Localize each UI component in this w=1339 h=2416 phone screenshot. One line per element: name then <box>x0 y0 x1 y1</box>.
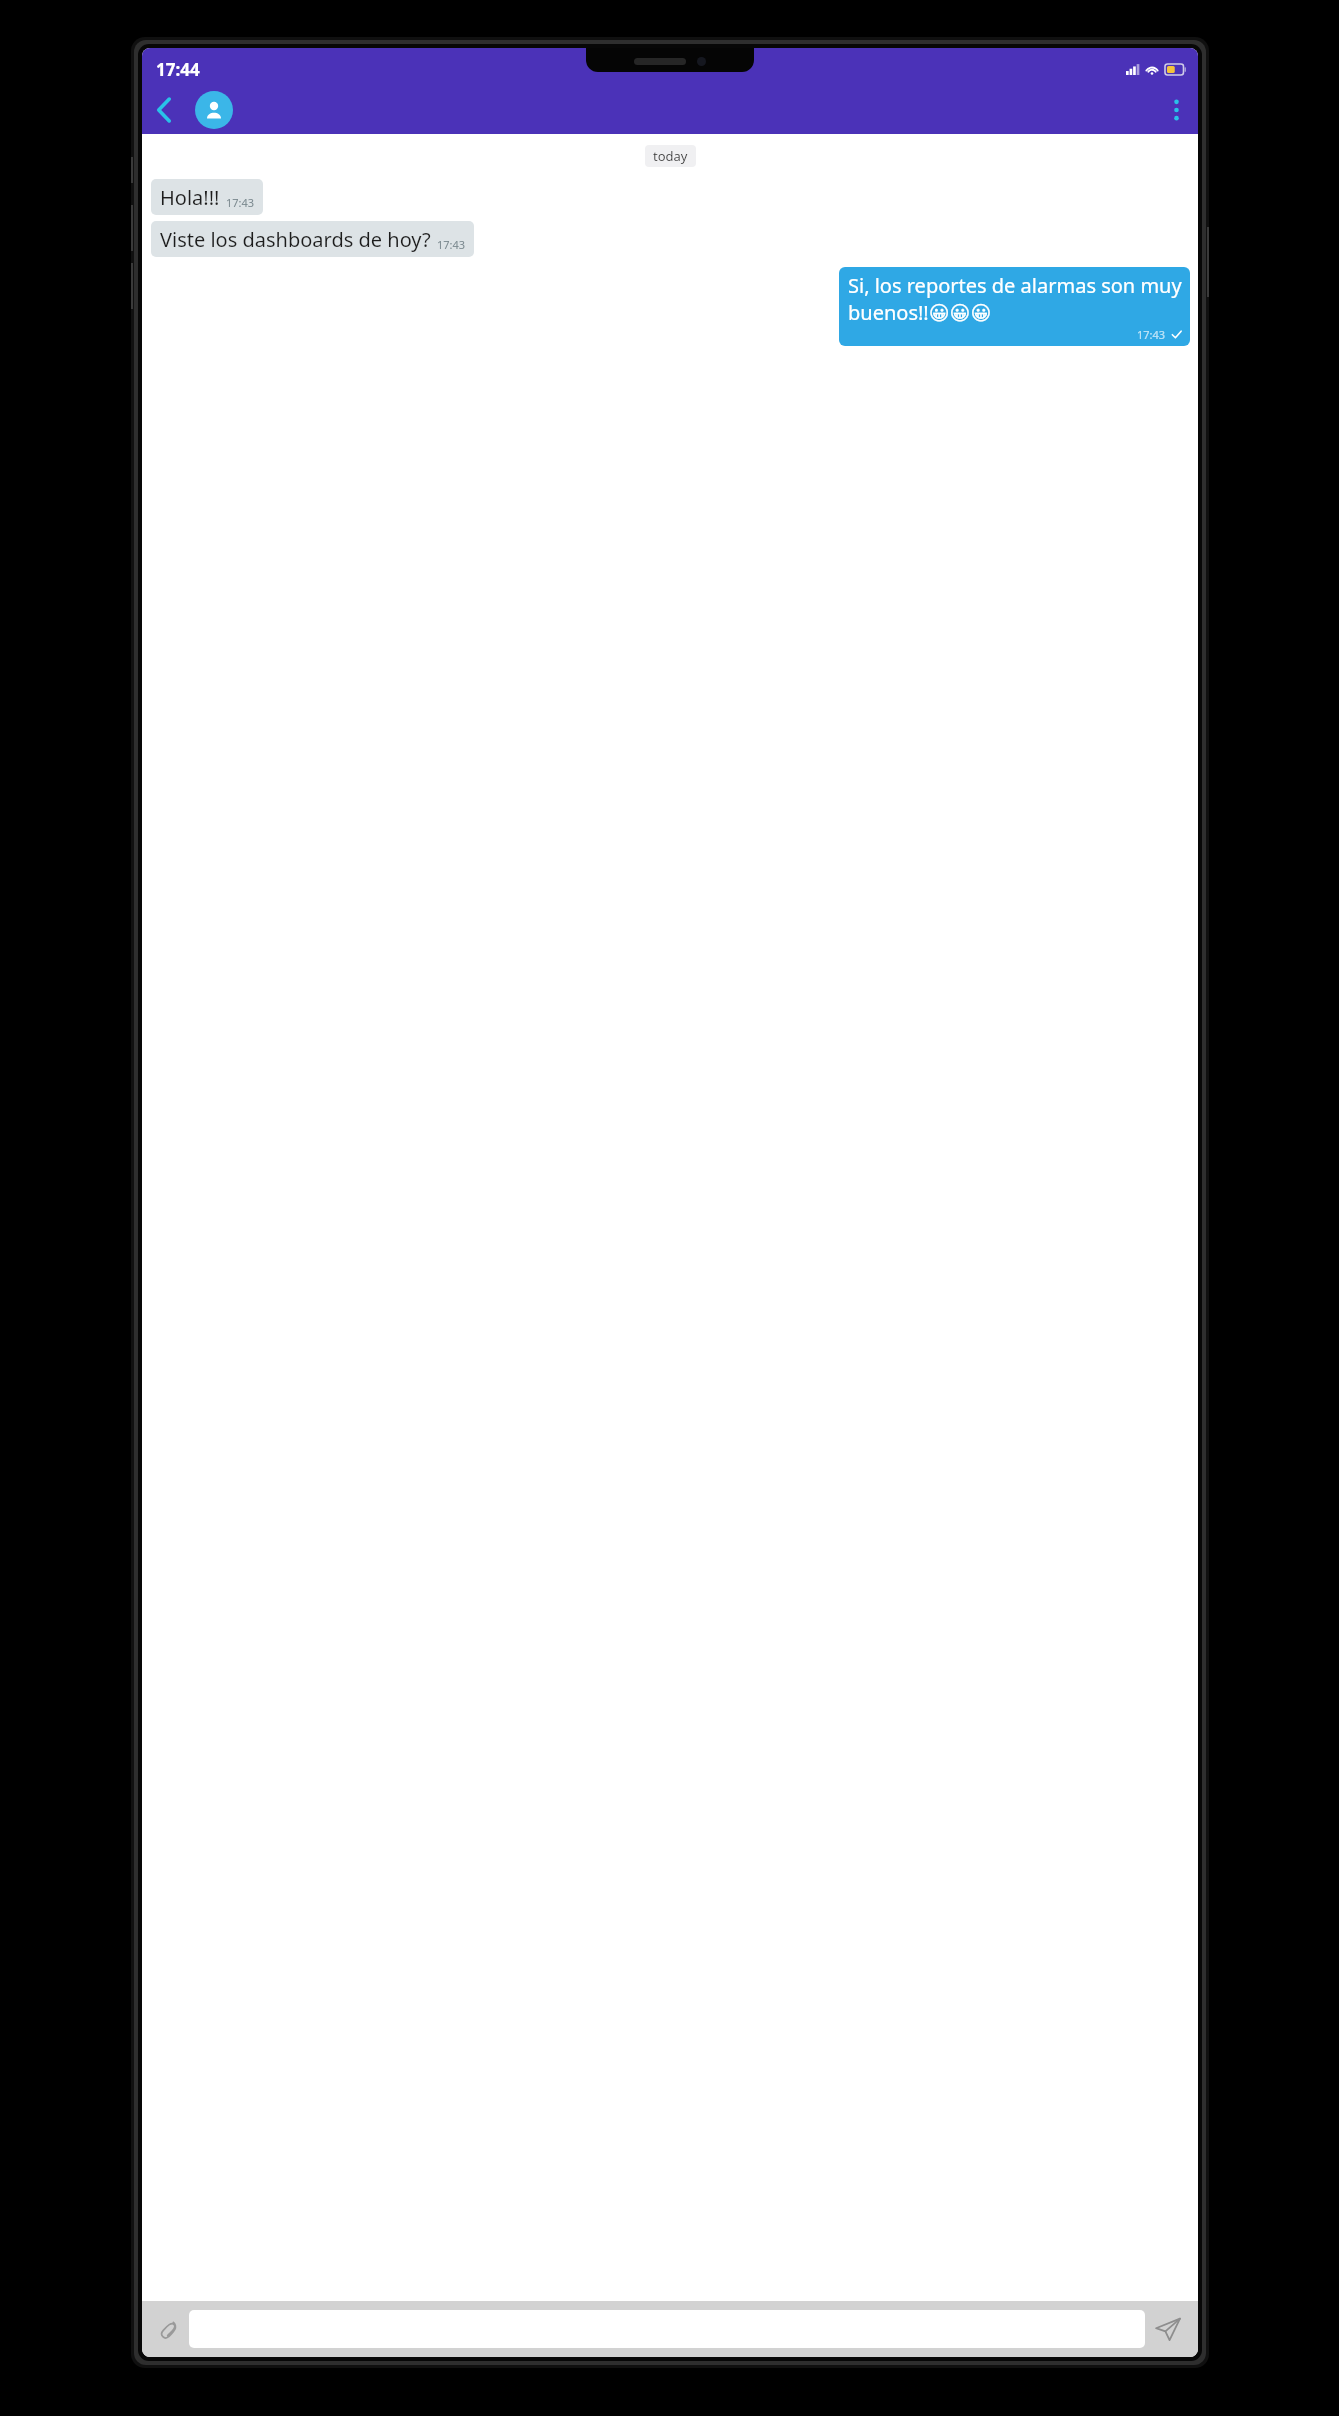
button[interactable]: Si, los reportes de alarmas son muy buen… <box>839 267 1190 346</box>
staticText: 17:43 <box>226 195 255 210</box>
button[interactable]: Back <box>142 88 186 132</box>
staticText: Viste los dashboards de hoy? <box>160 226 431 253</box>
button[interactable]: Attach file <box>149 2309 189 2349</box>
staticText: Si, los reportes de alarmas son muy buen… <box>848 272 1182 326</box>
button[interactable]: Contact avatar <box>195 91 233 129</box>
button[interactable]: Hola!!! <box>151 179 263 215</box>
staticText: 17:43 <box>437 237 466 252</box>
staticText: today <box>653 147 688 165</box>
button[interactable]: More options <box>1154 88 1198 132</box>
staticText: Hola!!! <box>160 184 220 211</box>
staticText: 17:43 <box>1137 327 1166 342</box>
staticText: 17:44 <box>156 58 200 81</box>
button[interactable]: Send <box>1145 2306 1191 2352</box>
button[interactable]: Viste los dashboards de hoy? <box>151 221 474 257</box>
